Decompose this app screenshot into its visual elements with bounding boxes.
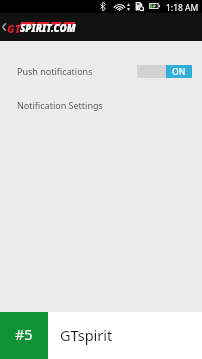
button[interactable]: Push notifications on (137, 65, 192, 78)
button[interactable]: Notification Settings (0, 93, 202, 115)
staticText: 1:18 AM (166, 2, 199, 14)
staticText: #5 (15, 324, 33, 344)
button[interactable]: Back (0, 13, 10, 41)
staticText: GT (7, 21, 21, 35)
staticText: Notification Settings (17, 99, 103, 111)
button[interactable]: #5 (0, 312, 202, 359)
button[interactable]: Push notifications (0, 60, 202, 84)
staticText: GTspirit (60, 325, 113, 345)
staticText: SPIRIT.COM (20, 22, 76, 35)
staticText: Push notifications (17, 65, 93, 77)
staticText: ON (172, 66, 186, 78)
